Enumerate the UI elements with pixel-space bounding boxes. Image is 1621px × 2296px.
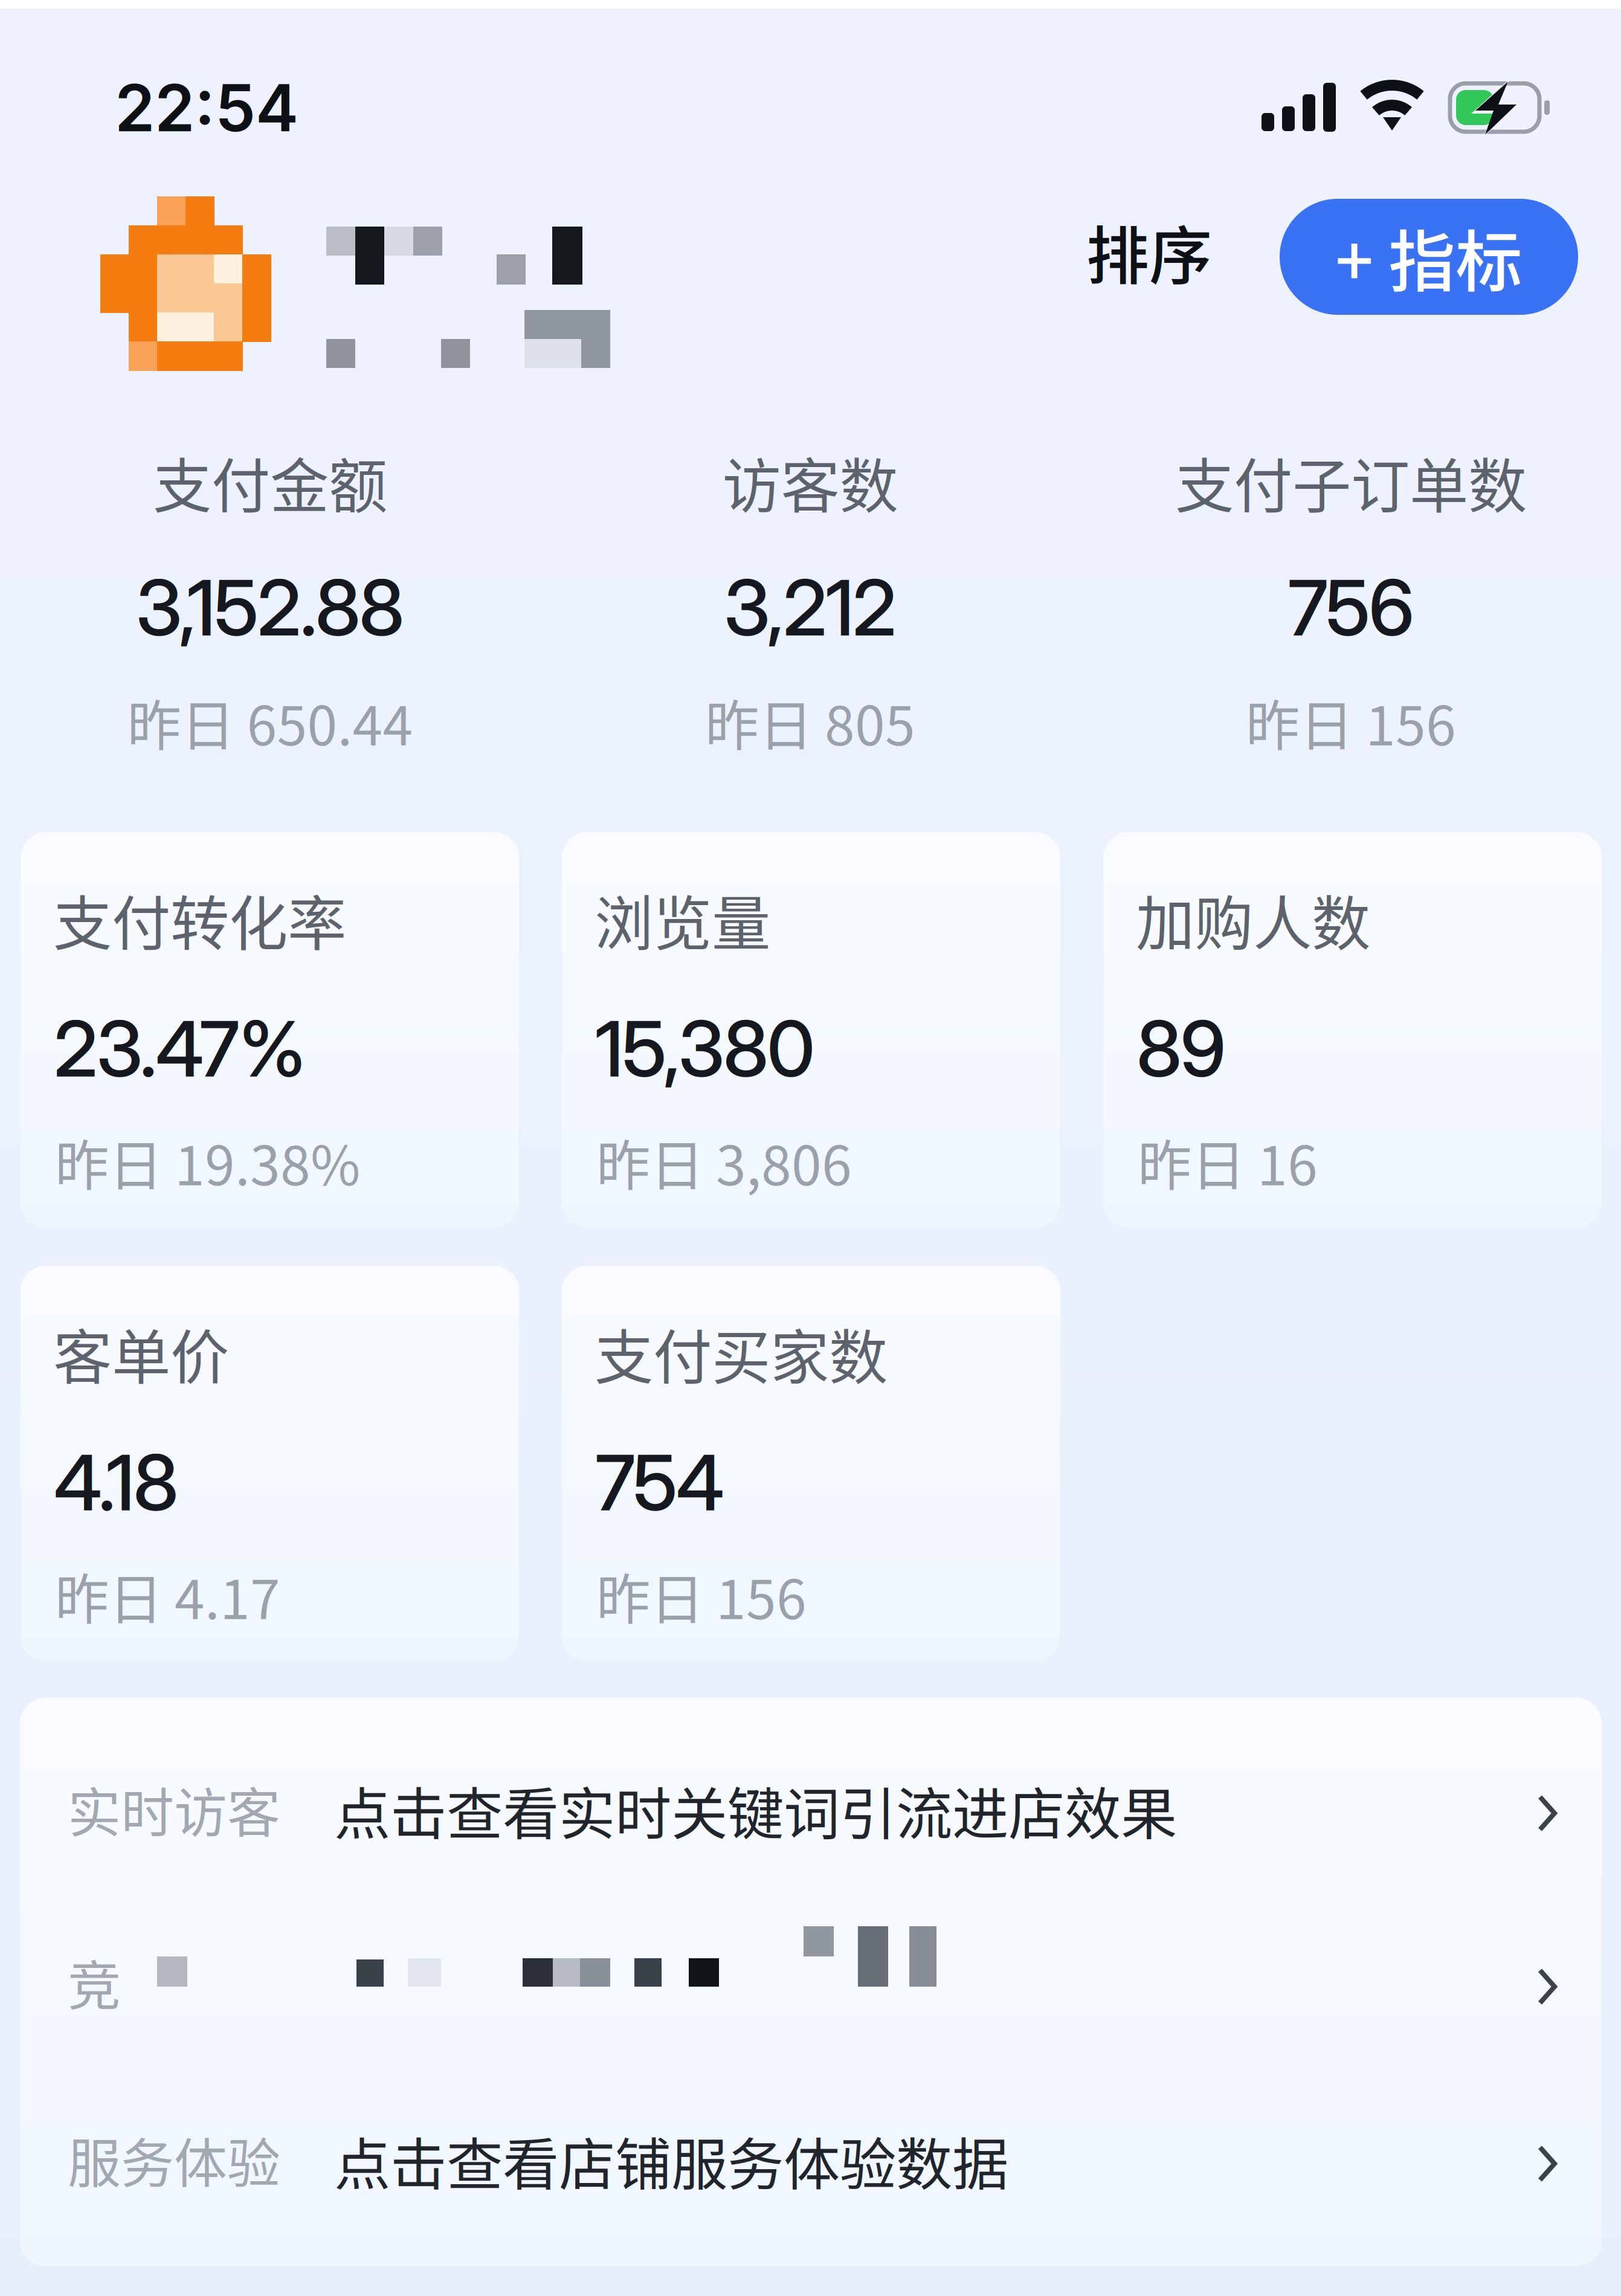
button[interactable]: 支付子订单数: [1081, 439, 1621, 753]
staticText: 点击查看实时关键词引流进店效果: [334, 1769, 1177, 1851]
staticText: 支付转化率: [53, 877, 346, 962]
staticText: 浏览量: [595, 877, 770, 962]
staticText: 访客数: [722, 439, 898, 524]
staticText: 3,152.88: [136, 561, 404, 654]
button[interactable]: 排序: [1068, 188, 1230, 315]
staticText: 4.18: [54, 1436, 179, 1529]
button[interactable]: 竞: [20, 1900, 1602, 2074]
staticText: 昨日 156: [1246, 683, 1456, 761]
staticText: 15,380: [595, 1002, 815, 1095]
staticText: 22:54: [115, 69, 298, 147]
button[interactable]: 店铺: [91, 187, 671, 387]
staticText: 昨日 805: [705, 683, 915, 761]
staticText: 服务体验: [68, 2121, 280, 2198]
staticText: 756: [1288, 561, 1414, 654]
staticText: 昨日 16: [1138, 1123, 1318, 1201]
staticText: 昨日 4.17: [55, 1556, 280, 1635]
button[interactable]: 支付买家数: [562, 1266, 1060, 1661]
staticText: 昨日 650.44: [127, 683, 413, 761]
staticText: 支付金额: [153, 439, 387, 524]
staticText: 昨日 156: [596, 1556, 807, 1635]
button[interactable]: 服务体验: [20, 2077, 1602, 2251]
button[interactable]: 访客数: [540, 439, 1080, 753]
staticText: 支付子订单数: [1175, 439, 1527, 524]
staticText: 昨日 3,806: [596, 1123, 852, 1201]
staticText: 实时访客: [68, 1770, 280, 1847]
staticText: 昨日 19.38%: [55, 1123, 360, 1201]
button[interactable]: 加购人数: [1103, 832, 1602, 1227]
staticText: 754: [595, 1436, 724, 1529]
staticText: + 指标: [1335, 208, 1523, 305]
staticText: 竞: [68, 1943, 121, 2020]
staticText: 支付买家数: [595, 1311, 888, 1396]
staticText: 3,212: [724, 561, 897, 654]
button[interactable]: 支付金额: [0, 439, 540, 753]
staticText: 89: [1136, 1002, 1226, 1095]
staticText: 客单价: [53, 1311, 229, 1396]
button[interactable]: 实时访客: [20, 1726, 1602, 1900]
staticText: 点击查看店铺服务体验数据: [334, 2120, 1008, 2201]
button[interactable]: + 指标: [1280, 199, 1578, 315]
button[interactable]: 客单价: [21, 1266, 519, 1661]
button[interactable]: 浏览量: [562, 832, 1060, 1227]
staticText: 排序: [1086, 206, 1212, 297]
button[interactable]: 支付转化率: [21, 832, 519, 1227]
staticText: 加购人数: [1136, 877, 1370, 962]
staticText: 23.47%: [54, 1002, 306, 1095]
